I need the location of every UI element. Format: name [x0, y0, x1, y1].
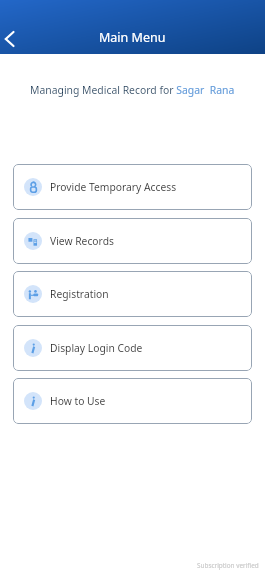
staticText: Main Menu: [99, 29, 166, 46]
button[interactable]: How to Use: [13, 378, 252, 424]
staticText: Subscription verified: [197, 561, 259, 570]
button[interactable]: Back: [0, 25, 28, 53]
button[interactable]: Registration: [13, 271, 252, 317]
staticText: How to Use: [50, 394, 106, 408]
button[interactable]: View Records: [13, 218, 252, 264]
staticText: Registration: [50, 287, 109, 301]
staticText: Display Login Code: [50, 341, 143, 355]
staticText: Provide Temporary Access: [50, 180, 177, 194]
staticText: View Records: [50, 234, 114, 248]
staticText: Managing Medical Record for Sagar Rana: [30, 83, 265, 97]
button[interactable]: Display Login Code: [13, 325, 252, 371]
button[interactable]: Provide Temporary Access: [13, 164, 252, 210]
